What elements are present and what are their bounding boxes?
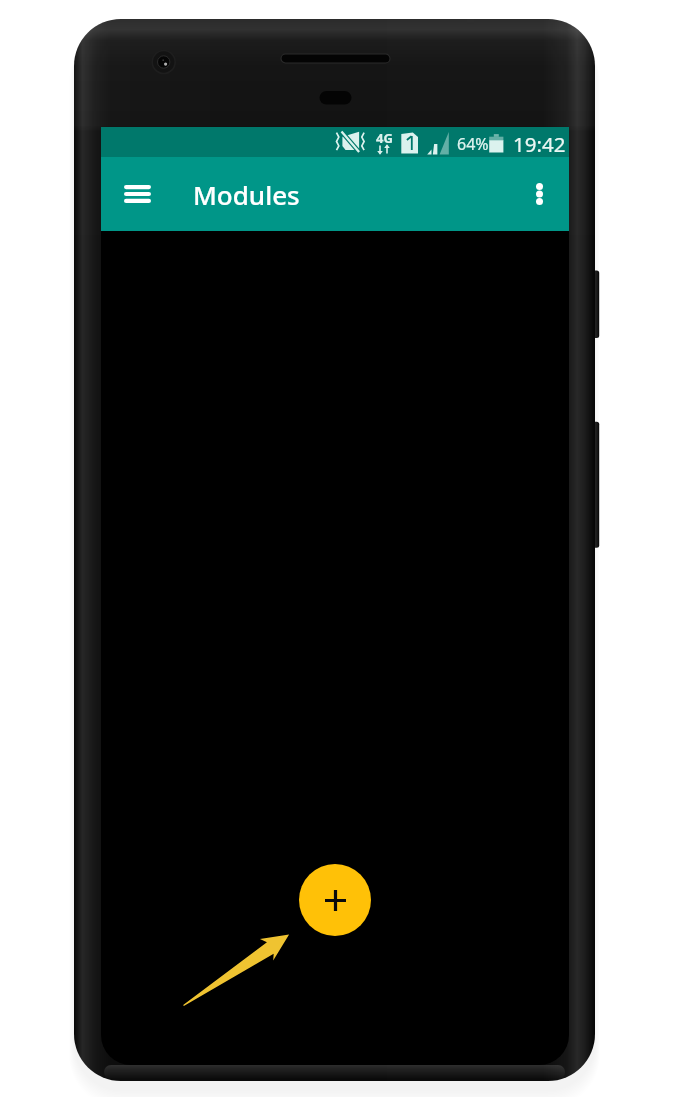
staticText: Modules <box>193 177 300 212</box>
staticText: 4G <box>376 129 393 147</box>
button[interactable]: Add module <box>299 864 371 936</box>
button[interactable]: More options <box>515 170 563 218</box>
button[interactable]: Open navigation drawer <box>113 170 161 218</box>
staticText: 64% <box>457 133 489 155</box>
staticText: 19:42 <box>513 130 566 158</box>
